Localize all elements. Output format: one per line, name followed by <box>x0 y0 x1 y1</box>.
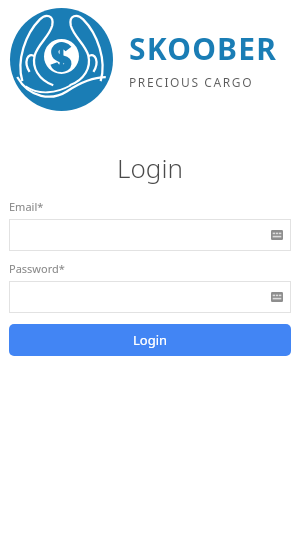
button[interactable]: Email <box>9 219 291 251</box>
button[interactable]: Password <box>9 281 291 313</box>
staticText: Email* <box>9 199 44 214</box>
button[interactable]: Login <box>9 324 291 356</box>
staticText: Login <box>0 150 300 185</box>
staticText: SKOOBER <box>129 28 278 69</box>
staticText: PRECIOUS CARGO <box>129 74 254 90</box>
staticText: Password* <box>9 261 65 276</box>
staticText: Login <box>133 331 168 349</box>
